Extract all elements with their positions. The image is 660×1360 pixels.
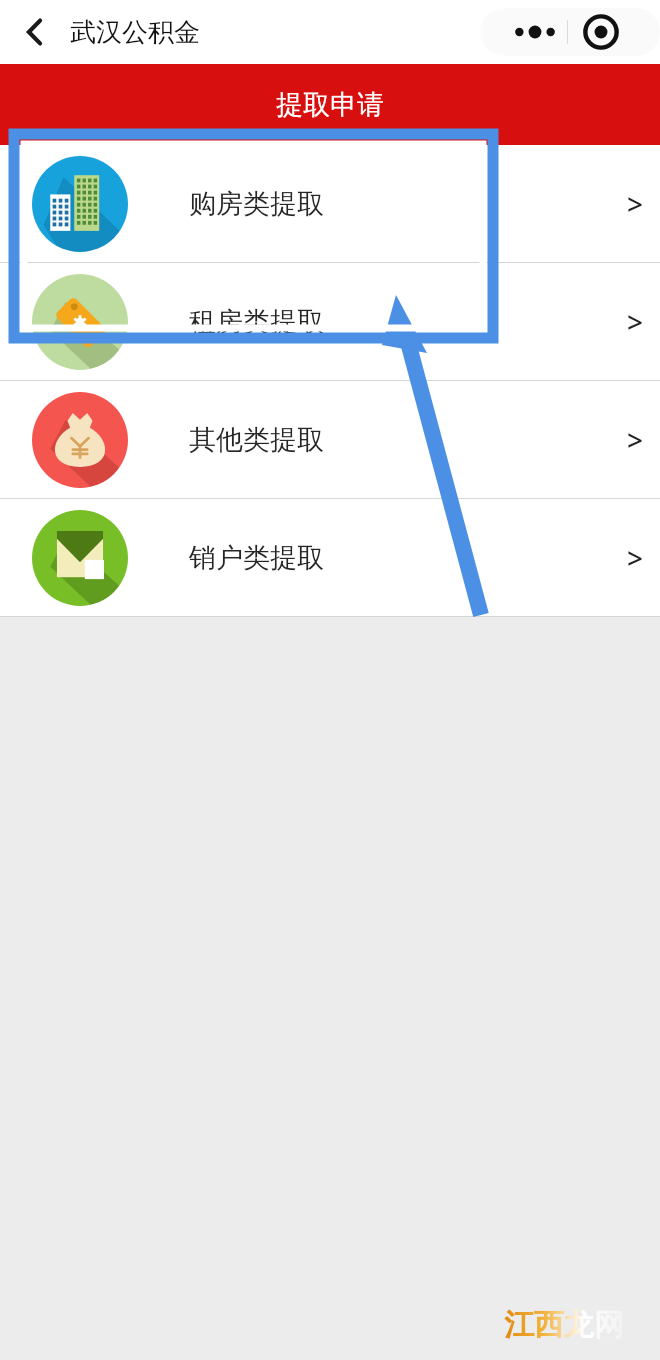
staticText: 江西龙网 [504,1306,624,1344]
staticText: > [627,185,644,223]
staticText: > [627,421,644,459]
button[interactable]: 租房类提取 [0,263,660,380]
staticText: > [627,303,644,341]
button[interactable]: 销户类提取 [0,499,660,616]
staticText: > [627,539,644,577]
staticText: 提取申请 [276,88,384,122]
button[interactable]: 购房类提取 [0,145,660,262]
button[interactable]: Close mini program [568,8,634,56]
button[interactable]: 其他类提取 [0,381,660,498]
staticText: 武汉公积金 [70,16,200,49]
button[interactable]: Back [20,11,50,53]
staticText: 购房类提取 [189,187,324,221]
button[interactable]: More [502,8,567,56]
staticText: 销户类提取 [189,541,324,575]
staticText: 其他类提取 [189,423,324,457]
staticText: 租房类提取 [189,305,324,339]
